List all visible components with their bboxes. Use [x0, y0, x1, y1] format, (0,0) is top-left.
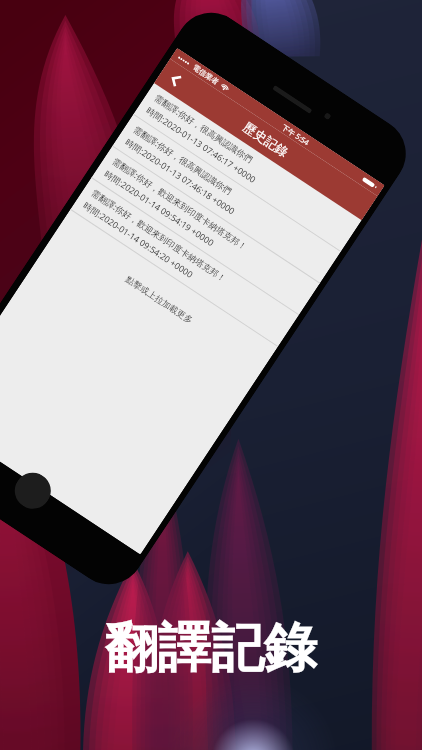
- button[interactable]: 需翻譯:你好，歡迎來到印度卡納塔克邦！: [71, 178, 299, 346]
- staticText: 下午 5:54: [280, 122, 311, 147]
- button[interactable]: 需翻譯:你好，很高興認識你們: [113, 115, 341, 283]
- staticText: 翻譯記錄: [105, 615, 317, 682]
- staticText: 點擊或上拉加載更多: [123, 274, 195, 327]
- staticText: 需翻譯:你好，歡迎來到印度卡納塔克邦！: [89, 187, 228, 285]
- staticText: 時間:2020-01-13 07:46:17 +0000: [144, 104, 258, 186]
- staticText: 時間:2020-01-13 07:46:18 +0000: [123, 136, 237, 217]
- staticText: 需翻譯:你好，歡迎來到印度卡納塔克邦！: [110, 155, 249, 253]
- button[interactable]: 需翻譯:你好，很高興認識你們: [134, 83, 362, 251]
- staticText: 歷史記錄: [240, 119, 291, 161]
- button[interactable]: Back: [157, 61, 194, 99]
- staticText: 時間:2020-01-14 09:54:19 +0000: [102, 168, 216, 249]
- staticText: 時間:2020-01-14 09:54:20 +0000: [81, 200, 195, 281]
- staticText: 電信業者: [191, 63, 221, 87]
- staticText: 需翻譯:你好，很高興認識你們: [152, 92, 255, 166]
- staticText: 需翻譯:你好，很高興認識你們: [131, 124, 235, 198]
- button[interactable]: 需翻譯:你好，歡迎來到印度卡納塔克邦！: [92, 146, 320, 315]
